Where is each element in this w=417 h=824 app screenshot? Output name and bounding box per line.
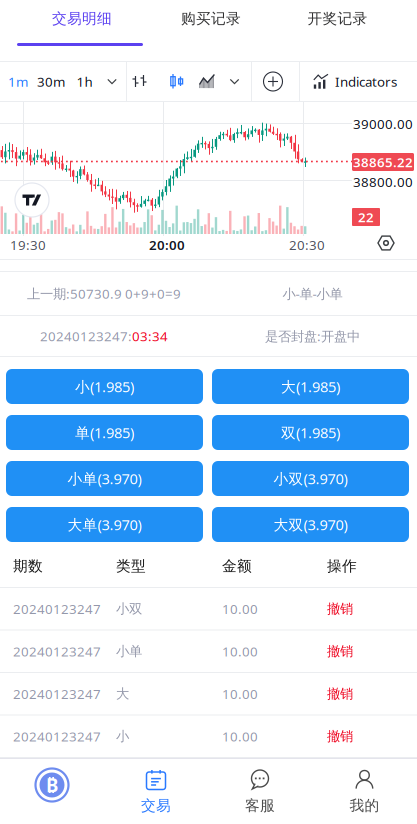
staticText: 20:00 <box>149 236 185 254</box>
staticText: 交易明细 <box>52 9 112 27</box>
staticText: 20240123247 <box>13 685 101 703</box>
button[interactable]: 我的 <box>312 759 417 824</box>
staticText: 我的 <box>349 796 379 814</box>
button[interactable]: 交易明细 <box>0 0 164 37</box>
staticText: 撤销 <box>327 686 353 702</box>
button[interactable]: Candlesticks <box>168 62 186 101</box>
staticText: 操作 <box>327 557 357 575</box>
staticText: 金额 <box>222 557 252 575</box>
button[interactable]: Add indicator <box>263 62 283 101</box>
button[interactable]: 撤销 <box>327 715 407 757</box>
staticText: 小单(3.970) <box>67 469 141 488</box>
staticText: 小双 <box>116 601 142 617</box>
button[interactable]: Bitcoin wallet <box>0 759 104 824</box>
staticText: 交易 <box>141 796 171 814</box>
staticText: 小双(3.970) <box>273 469 347 488</box>
button[interactable]: 撤销 <box>327 630 407 672</box>
staticText: 单(1.985) <box>75 423 134 442</box>
staticText: 期数 <box>13 557 43 575</box>
button[interactable]: 双(1.985) <box>212 415 409 450</box>
staticText: 19:30 <box>10 236 46 254</box>
button[interactable]: 客服 <box>208 759 312 824</box>
button[interactable]: 购买记录 <box>164 0 258 37</box>
staticText: 小 <box>116 728 129 744</box>
staticText: 20240123247 <box>13 642 101 660</box>
button[interactable]: Chart settings <box>377 234 395 252</box>
button[interactable]: 小(1.985) <box>6 369 203 404</box>
staticText: 撤销 <box>327 728 353 744</box>
button[interactable]: More intervals <box>101 62 123 101</box>
staticText: 类型 <box>116 557 146 575</box>
staticText: 20240123247 <box>13 600 101 618</box>
staticText: 双(1.985) <box>281 423 340 442</box>
button[interactable]: 大单(3.970) <box>6 507 203 542</box>
staticText: 1h <box>76 73 92 90</box>
staticText: 22 <box>358 208 374 226</box>
staticText: 大 <box>116 686 129 702</box>
button[interactable]: Bars <box>131 62 149 101</box>
staticText: 小单 <box>116 643 142 659</box>
button[interactable]: Area chart <box>196 62 218 101</box>
staticText: 10.00 <box>222 600 258 618</box>
button[interactable]: 撤销 <box>327 588 407 630</box>
staticText: 开奖记录 <box>307 9 367 27</box>
button[interactable]: 大双(3.970) <box>212 507 409 542</box>
staticText: 大(1.985) <box>281 377 340 396</box>
staticText: Indicators <box>335 73 397 90</box>
staticText: 上一期:50730.9 0+9+0=9 <box>27 285 181 302</box>
staticText: 购买记录 <box>181 9 241 27</box>
staticText: 38800.00 <box>353 173 413 191</box>
staticText: B <box>46 773 58 797</box>
staticText: 39000.00 <box>353 115 413 133</box>
staticText: 20240123247: <box>40 327 132 345</box>
staticText: 10.00 <box>222 727 258 745</box>
button[interactable]: More chart types <box>228 62 241 101</box>
button[interactable]: 小单(3.970) <box>6 461 203 496</box>
button[interactable]: 1m <box>4 62 32 101</box>
button[interactable]: 开奖记录 <box>258 0 417 37</box>
button[interactable]: Indicators <box>313 62 408 101</box>
button[interactable]: 30m <box>36 62 66 101</box>
staticText: 20:30 <box>289 236 325 254</box>
staticText: 是否封盘:开盘中 <box>265 327 360 345</box>
staticText: 20240123247 <box>13 727 101 745</box>
staticText: 大单(3.970) <box>67 515 141 534</box>
staticText: 撤销 <box>327 601 353 617</box>
staticText: 大双(3.970) <box>273 515 347 534</box>
staticText: 30m <box>37 73 65 90</box>
button[interactable]: 小双(3.970) <box>212 461 409 496</box>
staticText: 10.00 <box>222 642 258 660</box>
staticText: 小(1.985) <box>75 377 134 396</box>
staticText: 1m <box>8 73 28 90</box>
button[interactable]: 交易 <box>104 759 208 824</box>
button[interactable]: 1h <box>72 62 97 101</box>
staticText: 38865.22 <box>353 153 413 171</box>
staticText: 小-单-小单 <box>282 285 342 302</box>
staticText: 10.00 <box>222 685 258 703</box>
staticText: 撤销 <box>327 643 353 659</box>
button[interactable]: 大(1.985) <box>212 369 409 404</box>
staticText: 03:34 <box>132 327 168 345</box>
button[interactable]: 撤销 <box>327 673 407 715</box>
button[interactable]: 单(1.985) <box>6 415 203 450</box>
staticText: 客服 <box>245 796 275 814</box>
